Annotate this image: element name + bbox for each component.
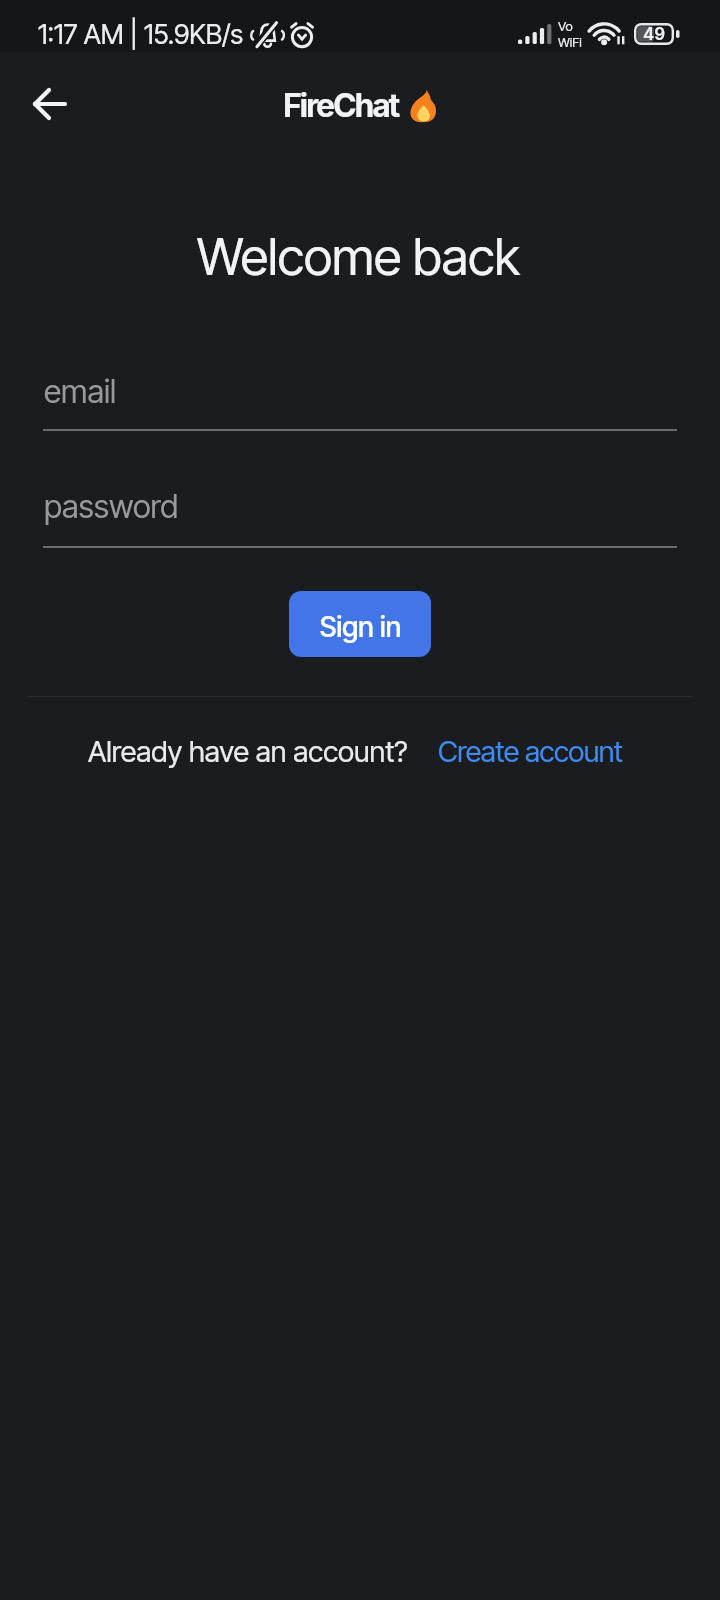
button[interactable] bbox=[22, 76, 78, 132]
staticText: Vo bbox=[558, 18, 573, 34]
button[interactable]: Sign in bbox=[289, 591, 431, 657]
staticText: Already have an account? bbox=[88, 734, 408, 769]
staticText: Sign in bbox=[319, 610, 401, 644]
staticText: 1:17 AM | 15.9KB/s bbox=[38, 18, 244, 51]
staticText: WiFi bbox=[558, 34, 582, 50]
staticText: password bbox=[44, 487, 179, 526]
staticText: FireChat bbox=[283, 86, 399, 125]
button[interactable]: Create account bbox=[438, 734, 623, 769]
staticText: Welcome back bbox=[197, 226, 520, 288]
staticText: 49 bbox=[643, 24, 666, 45]
staticText: email bbox=[44, 372, 117, 411]
